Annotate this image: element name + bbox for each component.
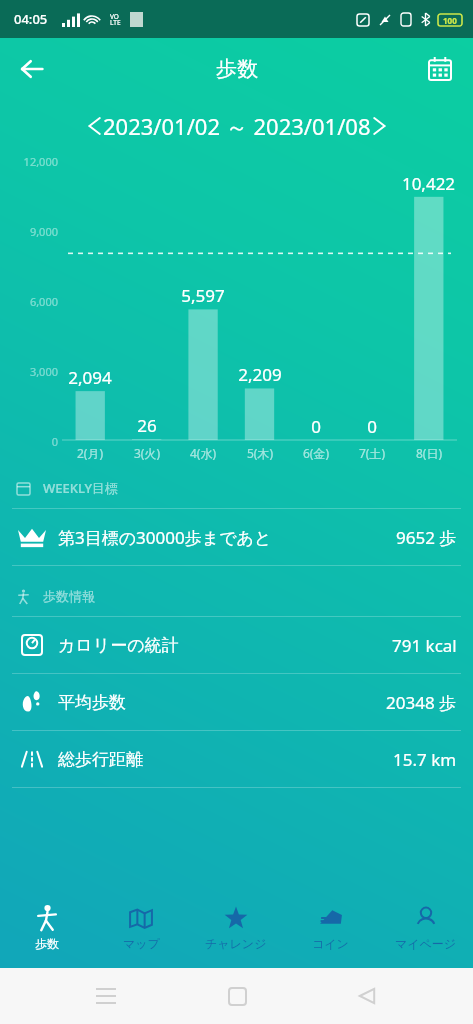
staticText: 04:05: [14, 10, 48, 28]
staticText: 0: [271, 415, 361, 438]
staticText: WEEKLY目標: [43, 479, 119, 497]
staticText: 5(木): [220, 445, 300, 461]
staticText: 791 kcal: [392, 634, 457, 657]
staticText: 歩数: [35, 936, 59, 951]
staticText: 総歩行距離: [58, 749, 143, 770]
staticText: 2(月): [50, 445, 130, 461]
staticText: 9652 歩: [396, 526, 457, 549]
staticText: 平均歩数: [58, 692, 126, 713]
staticText: 2,209: [215, 363, 305, 386]
button[interactable]: マップ: [94, 888, 188, 968]
staticText: 6,000: [4, 294, 58, 309]
staticText: 26: [102, 414, 192, 437]
staticText: 3(火): [107, 445, 187, 461]
staticText: 7(土): [332, 445, 412, 461]
button[interactable]: Menu: [82, 972, 130, 1020]
button[interactable]: Home: [213, 972, 261, 1020]
staticText: 20348 歩: [386, 691, 457, 714]
staticText: 9,000: [4, 224, 58, 239]
button[interactable]: 第3目標の30000歩まであと: [0, 509, 473, 565]
button[interactable]: 2023/01/02 ～ 2023/01/08: [0, 100, 473, 152]
staticText: 12,000: [4, 154, 58, 169]
staticText: 第3目標の30000歩まであと: [58, 526, 272, 549]
staticText: 2023/01/02 ～ 2023/01/08: [103, 111, 371, 141]
staticText: 4(水): [163, 445, 243, 461]
button[interactable]: コイン: [283, 888, 378, 968]
staticText: 0: [327, 415, 417, 438]
button[interactable]: 歩数: [0, 888, 94, 968]
staticText: 5,597: [158, 284, 248, 307]
staticText: 0: [4, 434, 58, 449]
staticText: チャレンジ: [205, 936, 267, 951]
staticText: マップ: [123, 936, 160, 951]
button[interactable]: Back: [343, 972, 391, 1020]
staticText: カロリーの統計: [58, 635, 179, 656]
staticText: 100: [443, 15, 457, 26]
button[interactable]: Calendar: [417, 46, 463, 92]
staticText: コイン: [312, 936, 349, 951]
button[interactable]: チャレンジ: [188, 888, 283, 968]
staticText: 歩数情報: [43, 588, 95, 604]
button[interactable]: Back: [8, 45, 56, 93]
staticText: 3,000: [4, 364, 58, 379]
button[interactable]: 総歩行距離: [0, 731, 473, 787]
button[interactable]: マイページ: [378, 888, 473, 968]
staticText: 2,094: [45, 366, 135, 389]
button[interactable]: 平均歩数: [0, 674, 473, 730]
button[interactable]: カロリーの統計: [0, 617, 473, 673]
staticText: 15.7 km: [393, 748, 457, 771]
staticText: 10,422: [384, 172, 473, 195]
staticText: 歩数: [216, 56, 258, 82]
staticText: 8(日): [389, 445, 469, 461]
staticText: マイページ: [395, 936, 457, 951]
staticText: 6(金): [276, 445, 356, 461]
staticText: VO LTE: [110, 12, 121, 27]
